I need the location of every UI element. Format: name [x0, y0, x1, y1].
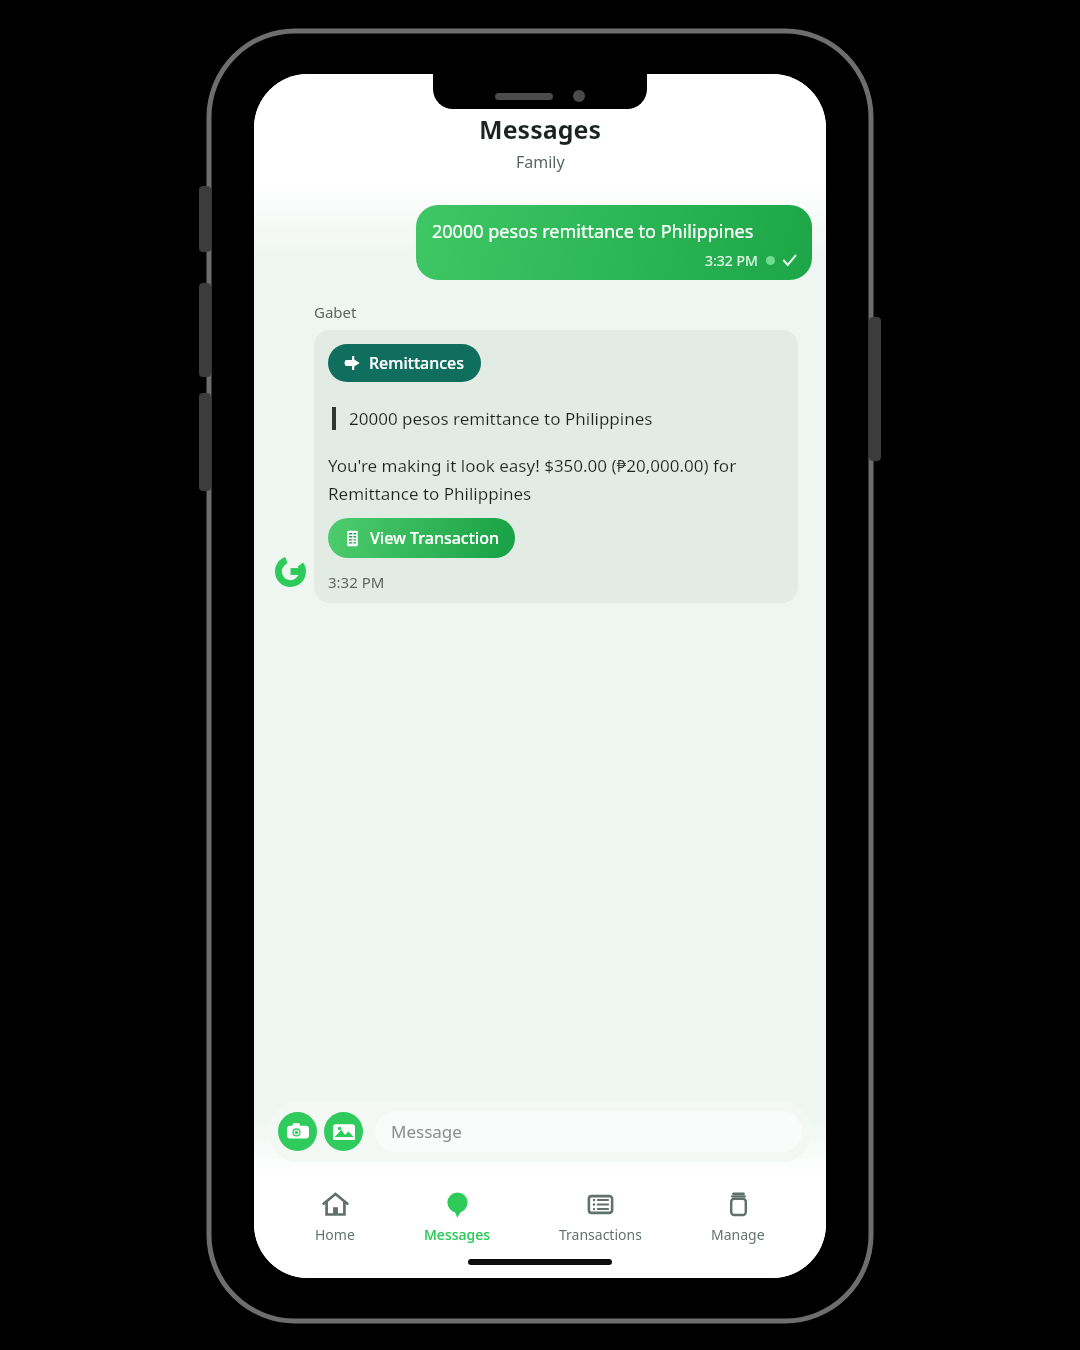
staticText: 20000 pesos remittance to Philippines [349, 407, 653, 430]
staticText: 3:32 PM [328, 572, 385, 592]
button[interactable]: Message [375, 1111, 802, 1152]
staticText: Messages [479, 112, 601, 146]
staticText: Message [391, 1120, 462, 1143]
staticText: Home [315, 1225, 355, 1244]
button[interactable]: View Transaction [328, 518, 515, 558]
staticText: 3:32 PM [705, 251, 758, 270]
button[interactable]: Remittances [314, 330, 798, 603]
staticText: View Transaction [370, 527, 499, 549]
button[interactable]: Take photo [278, 1112, 317, 1151]
staticText: Remittances [369, 352, 465, 374]
button[interactable]: Attach image [324, 1112, 363, 1151]
button[interactable]: Home [307, 1188, 363, 1247]
button[interactable]: 20000 pesos remittance to Philippines [416, 205, 812, 280]
button[interactable]: Messages [416, 1188, 499, 1247]
staticText: Manage [711, 1225, 765, 1244]
staticText: You're making it look easy! $350.00 (₱20… [328, 454, 784, 505]
button[interactable]: Manage [703, 1188, 773, 1247]
staticText: 20000 pesos remittance to Philippines [432, 219, 754, 244]
staticText: Messages [424, 1225, 491, 1244]
button[interactable]: Transactions [551, 1188, 650, 1247]
staticText: Family [516, 151, 565, 173]
staticText: Gabet [314, 302, 357, 322]
staticText: Transactions [559, 1225, 642, 1244]
button[interactable]: Remittances [328, 344, 481, 382]
